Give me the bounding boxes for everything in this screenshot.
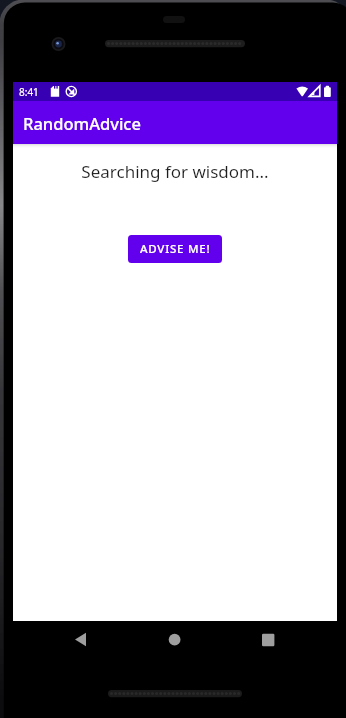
staticText: ADVISE ME! bbox=[140, 241, 211, 257]
staticText: RandomAdvice bbox=[23, 112, 141, 134]
button[interactable]: Back bbox=[55, 621, 95, 661]
staticText: Searching for wisdom... bbox=[81, 160, 269, 183]
button[interactable]: Home bbox=[148, 621, 188, 661]
staticText: 8:41 bbox=[19, 85, 39, 99]
button[interactable]: Recent apps bbox=[242, 621, 282, 661]
button[interactable]: ADVISE ME! bbox=[128, 235, 222, 263]
